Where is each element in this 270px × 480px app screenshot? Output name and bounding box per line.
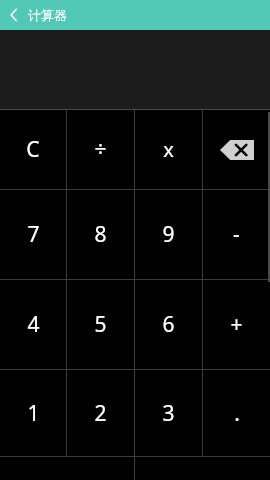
button[interactable]: 1	[0, 370, 66, 456]
staticText: 1	[27, 399, 40, 428]
staticText: x	[163, 136, 174, 163]
staticText: 计算器	[28, 7, 67, 23]
button[interactable]: Backspace	[203, 110, 270, 189]
staticText: 2	[94, 399, 107, 428]
staticText: 6	[162, 310, 175, 339]
button[interactable]: C	[0, 110, 66, 189]
button[interactable]: x	[135, 110, 202, 189]
button[interactable]: 9	[135, 190, 202, 279]
staticText: ÷	[94, 135, 107, 164]
button[interactable]: -	[203, 190, 270, 279]
button[interactable]: 4	[0, 280, 66, 369]
button[interactable]: 3	[135, 370, 202, 456]
staticText: +	[230, 310, 243, 339]
staticText: .	[234, 399, 240, 428]
staticText: 9	[162, 220, 175, 249]
button[interactable]: Back	[2, 3, 26, 27]
staticText: 4	[27, 310, 40, 339]
button[interactable]: +	[203, 280, 270, 369]
button[interactable]: 8	[67, 190, 134, 279]
staticText: 3	[162, 399, 175, 428]
staticText: 5	[94, 310, 107, 339]
staticText: 7	[27, 220, 40, 249]
button[interactable]: 7	[0, 190, 66, 279]
button[interactable]: 6	[135, 280, 202, 369]
staticText: 8	[94, 220, 107, 249]
button[interactable]: 5	[67, 280, 134, 369]
button[interactable]: ÷	[67, 110, 134, 189]
staticText: C	[26, 135, 40, 164]
button[interactable]: 2	[67, 370, 134, 456]
staticText: -	[233, 220, 240, 249]
button[interactable]: .	[203, 370, 270, 456]
